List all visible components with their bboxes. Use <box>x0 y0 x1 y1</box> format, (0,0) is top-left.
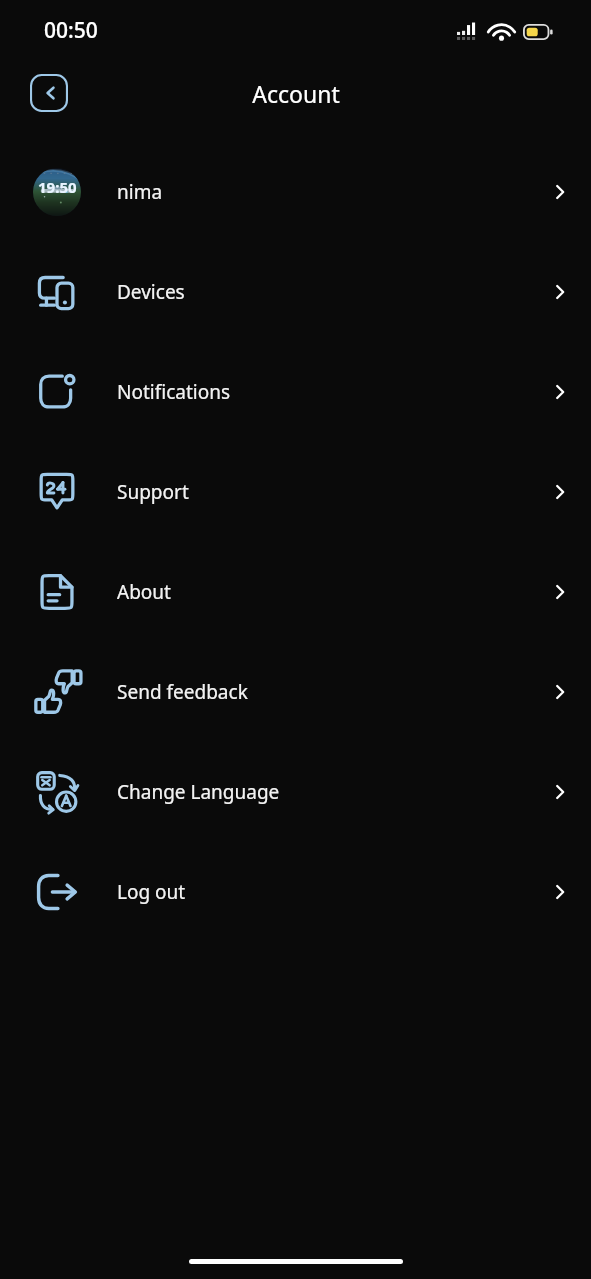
button[interactable]: Log out <box>0 842 591 942</box>
button[interactable]: About <box>0 542 591 642</box>
staticText: Account <box>252 78 340 109</box>
staticText: 19:50 <box>38 177 77 197</box>
staticText: Send feedback <box>117 679 248 705</box>
staticText: Support <box>117 479 189 505</box>
button[interactable]: Devices <box>0 242 591 342</box>
button[interactable]: Send feedback <box>0 642 591 742</box>
staticText: 00:50 <box>44 16 98 45</box>
button[interactable]: Support <box>0 442 591 542</box>
staticText: About <box>117 579 171 605</box>
staticText: nima <box>117 179 163 205</box>
button[interactable]: Back <box>30 74 68 112</box>
button[interactable]: Notifications <box>0 342 591 442</box>
button[interactable]: Change Language <box>0 742 591 842</box>
staticText: Change Language <box>117 779 280 805</box>
staticText: Notifications <box>117 379 231 405</box>
button[interactable]: 19:50 <box>0 142 591 242</box>
staticText: Log out <box>117 879 186 905</box>
staticText: Devices <box>117 279 185 305</box>
